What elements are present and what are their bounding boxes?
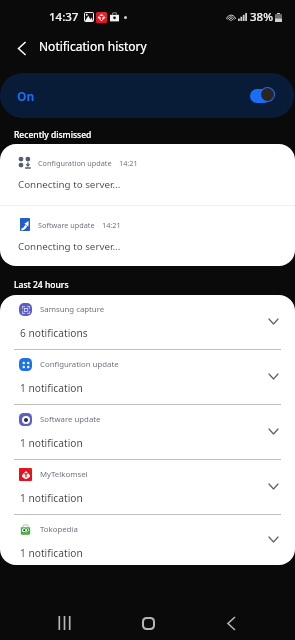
button[interactable]: Configuration update bbox=[0, 144, 295, 205]
staticText: 1 notification bbox=[20, 546, 83, 560]
button[interactable]: Configuration update bbox=[0, 350, 295, 404]
staticText: 1 notification bbox=[20, 491, 83, 505]
staticText: MyTelkomsel bbox=[40, 469, 88, 480]
staticText: Notification history bbox=[39, 38, 147, 54]
staticText: 1 notification bbox=[20, 381, 83, 395]
button[interactable]: On bbox=[0, 73, 294, 118]
button[interactable]: Software update bbox=[0, 405, 295, 459]
staticText: Tokopedia bbox=[40, 524, 78, 535]
staticText: 14:21 bbox=[119, 158, 138, 168]
staticText: Configuration update bbox=[40, 359, 119, 370]
staticText: 14:21 bbox=[102, 220, 121, 230]
staticText: Samsung capture bbox=[40, 304, 105, 315]
staticText: Connecting to server... bbox=[18, 240, 121, 253]
button[interactable]: Software update bbox=[0, 206, 295, 266]
button[interactable]: Back bbox=[211, 603, 251, 640]
staticText: Software update bbox=[40, 414, 101, 425]
staticText: Configuration update bbox=[38, 158, 112, 168]
staticText: Recently dismissed bbox=[14, 129, 92, 141]
button[interactable]: Samsung capture bbox=[0, 295, 295, 349]
staticText: Connecting to server... bbox=[18, 178, 121, 191]
button[interactable]: Back bbox=[10, 36, 34, 60]
button[interactable]: Recent apps bbox=[44, 603, 84, 640]
staticText: 14:37 bbox=[49, 9, 79, 25]
button[interactable]: Home bbox=[128, 603, 168, 640]
staticText: Last 24 hours bbox=[14, 279, 69, 291]
staticText: 38% bbox=[250, 9, 273, 25]
staticText: 6 notifications bbox=[20, 326, 88, 340]
button[interactable]: MyTelkomsel bbox=[0, 460, 295, 514]
staticText: Software update bbox=[38, 220, 95, 230]
staticText: On bbox=[17, 88, 35, 104]
staticText: 1 notification bbox=[20, 436, 83, 450]
button[interactable]: Tokopedia bbox=[0, 515, 295, 565]
